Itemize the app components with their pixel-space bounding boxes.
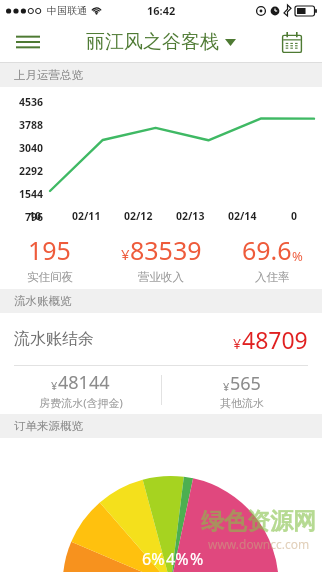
staticText: 流水账概览 <box>14 294 72 308</box>
staticText: 3040 <box>19 141 44 155</box>
staticText: 69.6 <box>242 233 292 267</box>
staticText: 实住间夜 <box>27 270 73 284</box>
staticText: 中国联通 <box>47 4 87 17</box>
button[interactable]: ¥ <box>161 366 322 414</box>
staticText: 绿色资源网 <box>201 507 316 536</box>
staticText: 16:42 <box>147 3 176 18</box>
staticText: 订单来源概览 <box>14 419 83 433</box>
staticText: 0 <box>291 209 298 223</box>
staticText: 48709 <box>242 324 308 355</box>
staticText: 02/12 <box>124 209 153 223</box>
staticText: 营业收入 <box>138 270 184 284</box>
staticText: 上月运营总览 <box>14 68 83 82</box>
staticText: 6% <box>142 548 165 570</box>
staticText: 02/13 <box>176 209 205 223</box>
staticText: 565 <box>230 371 261 396</box>
button[interactable]: Menu <box>8 22 48 62</box>
button[interactable]: 丽江风之谷客栈 <box>86 30 236 54</box>
staticText: 796 <box>25 210 44 224</box>
staticText: ¥ <box>233 334 242 353</box>
staticText: 83539 <box>130 233 202 267</box>
staticText: 4536 <box>19 95 44 109</box>
staticText: 4% <box>166 548 189 570</box>
staticText: 入住率 <box>255 270 290 284</box>
staticText: ¥ <box>223 379 230 394</box>
staticText: 48144 <box>58 370 110 395</box>
staticText: 丽江风之谷客栈 <box>86 30 219 54</box>
staticText: 2292 <box>19 164 44 178</box>
staticText: www.downcc.com <box>208 536 310 552</box>
staticText: 其他流水 <box>220 396 264 410</box>
button[interactable]: Calendar <box>272 22 312 62</box>
staticText: ¥ <box>51 378 58 393</box>
button[interactable]: ¥ <box>0 366 161 414</box>
staticText: 房费流水(含押金) <box>39 395 123 410</box>
staticText: 195 <box>28 233 71 267</box>
staticText: % <box>292 247 303 265</box>
staticText: 3788 <box>19 118 44 132</box>
staticText: 02/14 <box>228 209 257 223</box>
staticText: % <box>190 548 204 570</box>
staticText: 1544 <box>19 187 44 201</box>
button[interactable]: 195 <box>0 227 99 289</box>
staticText: 流水账结余 <box>14 329 94 349</box>
staticText: 02/11 <box>72 209 101 223</box>
button[interactable]: 69.6 <box>223 227 322 289</box>
staticText: 10 <box>29 209 42 223</box>
staticText: ¥ <box>121 244 130 264</box>
button[interactable]: 流水账结余 <box>0 313 322 365</box>
button[interactable]: ¥ <box>99 227 223 289</box>
